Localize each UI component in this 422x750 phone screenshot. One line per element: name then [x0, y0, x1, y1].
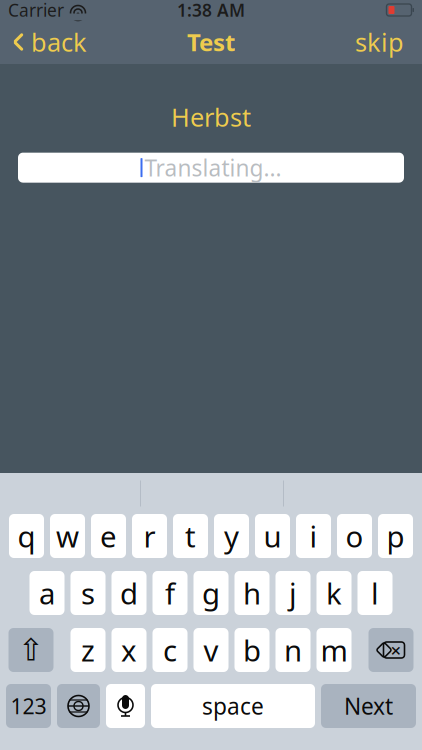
staticText: Carrier: [8, 0, 64, 21]
staticText: o: [345, 516, 363, 555]
staticText: d: [120, 573, 138, 612]
staticText: space: [202, 691, 264, 721]
staticText: i: [309, 516, 317, 555]
button[interactable]: x: [111, 628, 146, 672]
button[interactable]: l: [357, 571, 392, 615]
staticText: b: [243, 630, 261, 669]
button[interactable]: w: [50, 514, 85, 558]
button[interactable]: a: [29, 571, 64, 615]
button[interactable]: b: [234, 628, 269, 672]
staticText: v: [203, 630, 218, 669]
button[interactable]: o: [337, 514, 372, 558]
button[interactable]: h: [234, 571, 269, 615]
button[interactable]: 123: [6, 684, 51, 728]
button[interactable]: v: [193, 628, 228, 672]
staticText: s: [81, 573, 95, 612]
staticText: a: [39, 573, 55, 612]
button[interactable]: y: [214, 514, 249, 558]
staticText: Herbst: [171, 100, 251, 134]
button[interactable]: Delete: [368, 628, 413, 672]
button[interactable]: s: [70, 571, 105, 615]
button[interactable]: Next keyboard: [57, 684, 100, 728]
button[interactable]: t: [173, 514, 208, 558]
button[interactable]: Next: [321, 684, 416, 728]
staticText: w: [56, 516, 79, 555]
staticText: g: [202, 573, 220, 612]
button[interactable]: c: [152, 628, 187, 672]
button[interactable]: j: [275, 571, 310, 615]
button[interactable]: f: [152, 571, 187, 615]
button[interactable]: space: [151, 684, 315, 728]
staticText: Test: [187, 26, 235, 58]
button[interactable]: g: [193, 571, 228, 615]
button[interactable]: m: [316, 628, 351, 672]
button[interactable]: Dictation: [106, 684, 145, 728]
staticText: j: [289, 573, 297, 612]
staticText: q: [17, 516, 35, 555]
staticText: h: [243, 573, 261, 612]
button[interactable]: e: [91, 514, 126, 558]
staticText: e: [100, 516, 117, 555]
staticText: ⇧: [18, 633, 44, 667]
button[interactable]: q: [9, 514, 44, 558]
button[interactable]: back: [0, 20, 99, 64]
button[interactable]: r: [132, 514, 167, 558]
staticText: skip: [355, 25, 404, 59]
staticText: Translating...: [144, 153, 281, 183]
button[interactable]: Translating...: [18, 153, 404, 183]
button[interactable]: p: [378, 514, 413, 558]
button[interactable]: Shift: [8, 628, 53, 672]
staticText: back: [31, 25, 87, 59]
staticText: x: [121, 630, 137, 669]
button[interactable]: u: [255, 514, 290, 558]
staticText: y: [224, 516, 239, 555]
button[interactable]: d: [111, 571, 146, 615]
staticText: ×: [390, 638, 401, 662]
staticText: u: [263, 516, 281, 555]
button[interactable]: k: [316, 571, 351, 615]
staticText: c: [163, 630, 177, 669]
staticText: n: [284, 630, 302, 669]
staticText: z: [81, 630, 95, 669]
staticText: 123: [10, 692, 46, 720]
button[interactable]: skip: [337, 20, 422, 64]
staticText: k: [326, 573, 342, 612]
button[interactable]: z: [70, 628, 105, 672]
staticText: p: [386, 516, 404, 555]
staticText: t: [185, 516, 196, 555]
staticText: 1:38 AM: [177, 0, 245, 21]
staticText: f: [165, 573, 175, 612]
staticText: m: [320, 630, 347, 669]
staticText: Next: [344, 691, 393, 721]
button[interactable]: i: [296, 514, 331, 558]
staticText: r: [143, 516, 155, 555]
button[interactable]: n: [275, 628, 310, 672]
staticText: l: [371, 573, 379, 612]
